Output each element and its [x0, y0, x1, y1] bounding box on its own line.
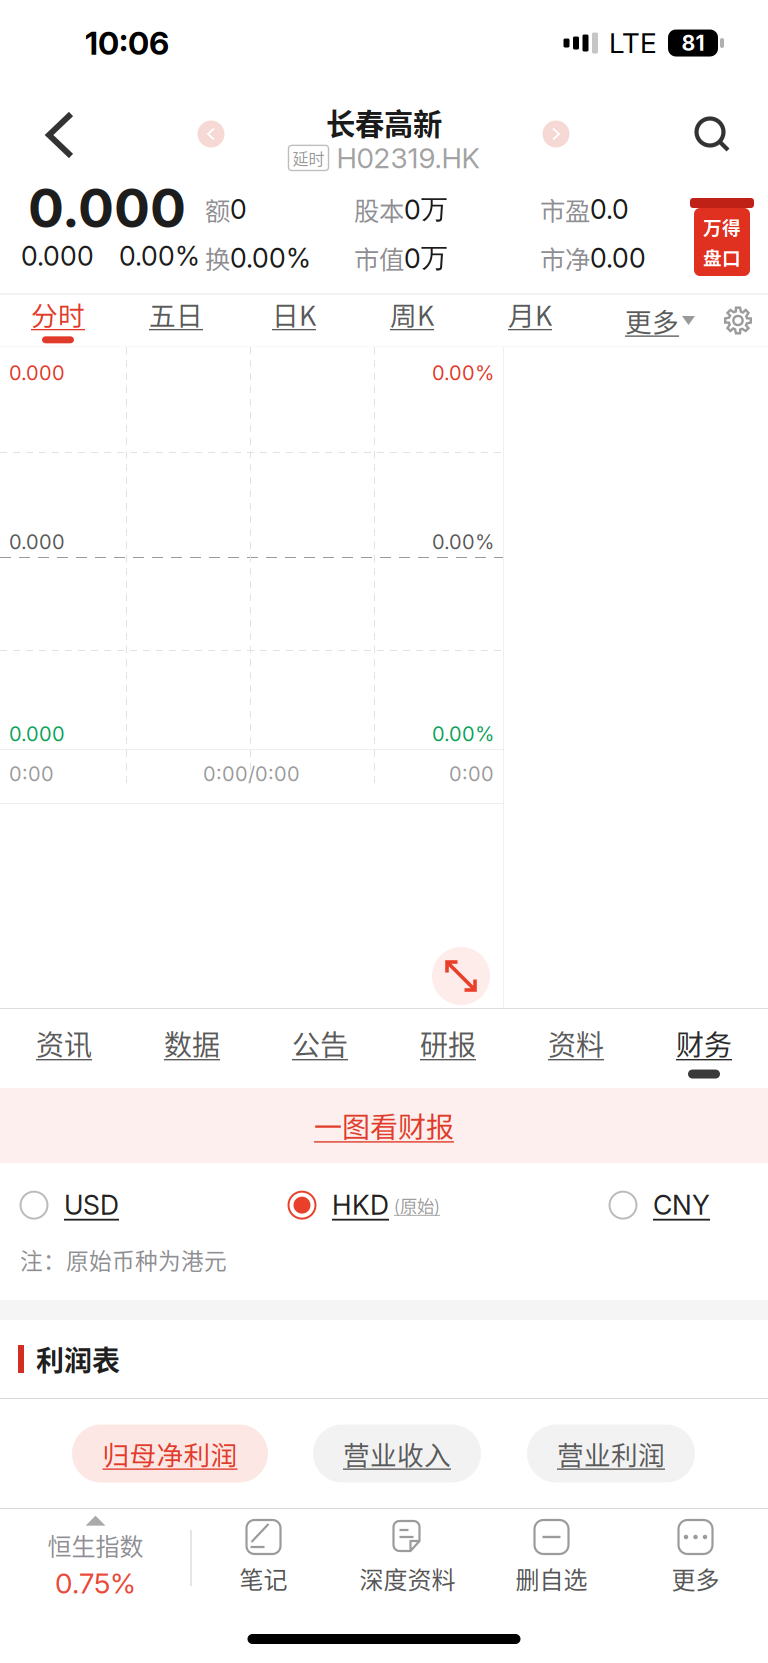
staticText: 一图看财报 — [314, 1105, 454, 1146]
button[interactable]: 五日 — [117, 295, 235, 346]
button[interactable]: 营业收入 — [313, 1424, 481, 1482]
staticText: 盘口 — [703, 243, 741, 270]
staticText: 额 — [205, 191, 230, 228]
button[interactable]: 万得盘口 — [690, 177, 754, 293]
button[interactable]: 研报 — [384, 1009, 512, 1088]
staticText: LTE — [609, 26, 657, 60]
staticText: 利润表 — [36, 1339, 120, 1379]
staticText: 0.00% — [119, 240, 200, 272]
staticText: 营业收入 — [343, 1434, 451, 1473]
staticText: 注：原始币种为港元 — [20, 1243, 227, 1276]
button[interactable]: 删自选 — [479, 1509, 623, 1607]
button[interactable]: Previous stock — [194, 117, 228, 151]
staticText: 更多 — [671, 1561, 719, 1596]
button[interactable]: HKD — [288, 1189, 440, 1221]
staticText: 万得 — [703, 213, 741, 240]
staticText: 长春高新 — [326, 101, 442, 143]
button[interactable]: Next stock — [539, 117, 573, 151]
staticText: 归母净利润 — [102, 1434, 237, 1473]
button[interactable]: 周K — [353, 295, 471, 346]
staticText: 0 — [230, 193, 247, 225]
staticText: 财务 — [676, 1023, 732, 1063]
button[interactable]: USD — [20, 1189, 119, 1221]
staticText: 0.000 — [21, 240, 94, 272]
staticText: 市净 — [540, 240, 590, 276]
staticText: 股本 — [354, 191, 404, 228]
staticText: 月K — [508, 295, 552, 333]
staticText: 0.00 — [590, 242, 646, 274]
button[interactable]: 数据 — [128, 1009, 256, 1088]
button[interactable]: 更多 — [589, 295, 707, 346]
button[interactable]: 深度资料 — [335, 1509, 479, 1607]
staticText: CNY — [653, 1189, 710, 1221]
staticText: 五日 — [149, 295, 203, 333]
staticText: 市盈 — [540, 191, 590, 228]
button[interactable]: 月K — [471, 295, 589, 346]
staticText: 0.000 — [9, 722, 65, 746]
button[interactable]: 日K — [235, 295, 353, 346]
button[interactable]: Fullscreen chart — [429, 944, 493, 1008]
staticText: 0.00% — [230, 242, 311, 274]
staticText: 恒生指数 — [47, 1528, 143, 1562]
staticText: 10:06 — [85, 24, 169, 62]
staticText: 0万 — [404, 192, 448, 226]
staticText: 0.0 — [590, 193, 629, 225]
staticText: 营业利润 — [557, 1434, 665, 1473]
staticText: 资料 — [548, 1023, 604, 1063]
staticText: 日K — [272, 295, 316, 333]
staticText: 0:00 — [449, 762, 494, 786]
staticText: 0.75% — [55, 1566, 136, 1600]
staticText: 0:00 — [9, 762, 54, 786]
staticText: 0.00% — [432, 530, 494, 554]
button[interactable]: 营业利润 — [527, 1424, 695, 1482]
staticText: 0.00% — [432, 361, 494, 385]
staticText: 删自选 — [515, 1561, 587, 1596]
button[interactable]: 笔记 — [191, 1509, 335, 1607]
staticText: 数据 — [164, 1023, 220, 1063]
staticText: 周K — [390, 295, 434, 333]
button[interactable]: 归母净利润 — [72, 1424, 268, 1482]
staticText: 公告 — [292, 1023, 348, 1063]
staticText: 更多 — [625, 301, 679, 340]
staticText: 笔记 — [239, 1561, 287, 1596]
staticText: 0.000 — [9, 361, 65, 385]
staticText: 0.00% — [432, 722, 494, 746]
staticText: 深度资料 — [359, 1561, 455, 1596]
staticText: 分时 — [31, 295, 85, 333]
button[interactable]: 公告 — [256, 1009, 384, 1088]
staticText: 延时 — [292, 146, 324, 170]
staticText: 研报 — [420, 1023, 476, 1063]
staticText: 81 — [681, 30, 704, 56]
staticText: 换 — [205, 240, 230, 276]
staticText: 0.000 — [9, 530, 65, 554]
staticText: USD — [64, 1189, 119, 1221]
button[interactable]: 资料 — [512, 1009, 640, 1088]
button[interactable]: 资讯 — [0, 1009, 128, 1088]
staticText: (原始) — [394, 1193, 440, 1218]
button[interactable]: CNY — [609, 1189, 710, 1221]
staticText: 0万 — [404, 241, 448, 275]
button[interactable]: 分时 — [0, 295, 117, 346]
button[interactable]: Chart settings — [707, 295, 768, 346]
button[interactable]: 财务 — [640, 1009, 768, 1088]
staticText: 0.000 — [28, 176, 186, 240]
button[interactable]: 一图看财报 — [0, 1088, 768, 1163]
button[interactable]: 更多 — [623, 1509, 767, 1607]
button[interactable]: 恒生指数 — [0, 1509, 190, 1607]
staticText: 资讯 — [36, 1023, 92, 1063]
staticText: 0:00/0:00 — [203, 762, 300, 786]
button[interactable]: Search — [687, 109, 739, 161]
staticText: H02319.HK — [336, 141, 479, 175]
button[interactable]: Back — [32, 106, 88, 164]
staticText: HKD — [332, 1189, 389, 1221]
staticText: 市值 — [354, 240, 404, 276]
